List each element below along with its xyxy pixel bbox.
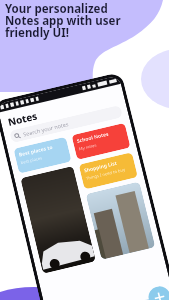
- staticText: Best places to visit: [18, 141, 64, 158]
- staticText: best places: [20, 155, 43, 166]
- staticText: Your personalized Notes app with user fr…: [5, 1, 121, 41]
- staticText: My notes: [78, 142, 98, 152]
- button[interactable]: Add note: [146, 284, 169, 300]
- button[interactable]: [20, 166, 96, 274]
- staticText: Things I need to buy: [85, 167, 127, 182]
- staticText: Shopping List: [83, 160, 118, 174]
- button[interactable]: Best places to visit: [13, 137, 72, 174]
- button[interactable]: Cars: [54, 294, 169, 300]
- button[interactable]: Search your notes: [9, 105, 123, 143]
- staticText: Notes: [6, 109, 39, 129]
- button[interactable]: Shopping List: [79, 152, 138, 190]
- staticText: School Notes: [76, 131, 110, 145]
- button[interactable]: [86, 182, 155, 260]
- staticText: Search your notes: [22, 120, 69, 137]
- button[interactable]: School Notes: [71, 123, 131, 160]
